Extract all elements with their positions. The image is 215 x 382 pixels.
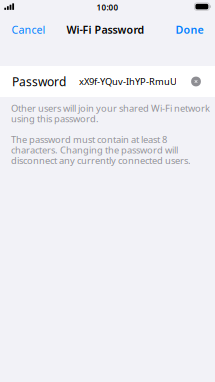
button[interactable]: Cancel (8, 18, 48, 41)
staticText: 10:00 (96, 2, 118, 13)
button[interactable]: Done (172, 18, 206, 41)
staticText: xX9f-YQuv-IhYP-RmuU (79, 75, 177, 88)
staticText: The password must contain at least 8 cha… (11, 133, 191, 167)
staticText: Other users will join your shared Wi‑Fi … (11, 102, 210, 125)
button[interactable]: Clear password (188, 70, 204, 92)
staticText: Done (175, 22, 203, 37)
staticText: Cancel (11, 22, 45, 37)
staticText: Wi-Fi Password (66, 22, 144, 37)
staticText: Password (12, 73, 66, 89)
